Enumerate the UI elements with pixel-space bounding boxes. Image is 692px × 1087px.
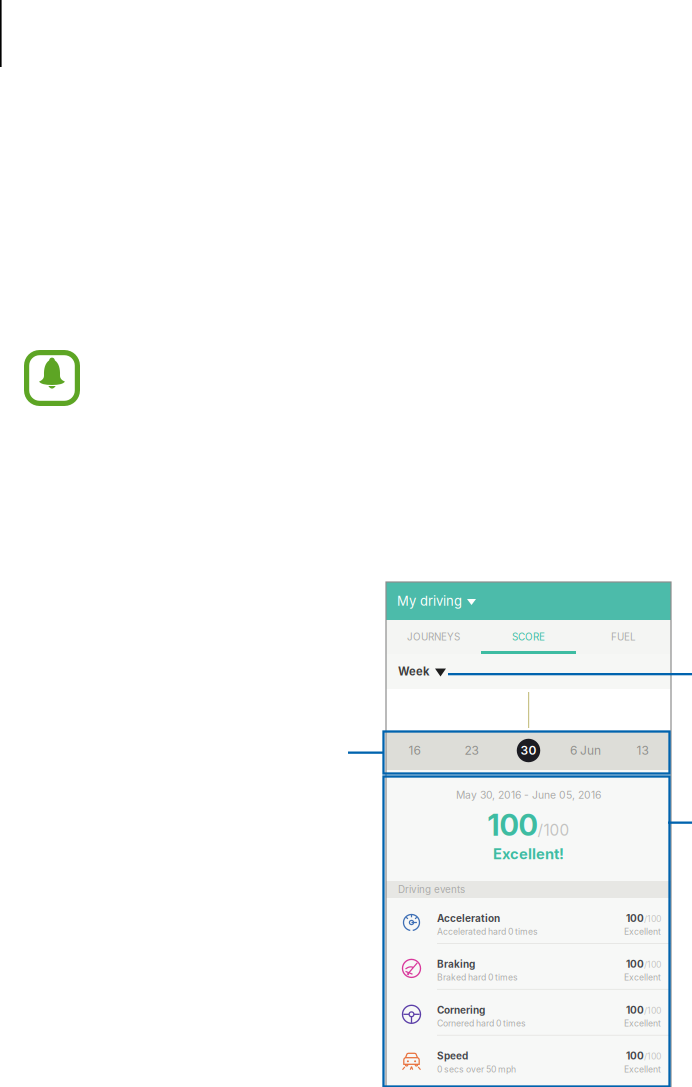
staticText: 100: [626, 958, 644, 970]
button[interactable]: Speed: [386, 1036, 671, 1081]
staticText: Cornering: [437, 1004, 485, 1016]
staticText: 30: [520, 743, 536, 758]
staticText: My driving: [397, 593, 462, 609]
staticText: 100: [626, 1004, 644, 1016]
staticText: SCORE: [512, 631, 545, 643]
staticText: JOURNEYS: [407, 631, 460, 643]
button[interactable]: My driving: [386, 582, 671, 620]
button[interactable]: Cornering: [386, 990, 671, 1035]
staticText: FUEL: [611, 631, 636, 643]
staticText: 100: [626, 1050, 644, 1062]
staticText: May 30, 2016 - June 05, 2016: [456, 789, 601, 801]
staticText: /100: [644, 913, 661, 924]
staticText: Driving events: [398, 883, 465, 895]
button[interactable]: 23: [443, 731, 500, 770]
button[interactable]: Week: [386, 654, 671, 689]
staticText: /100: [537, 821, 569, 839]
staticText: /100: [644, 959, 661, 970]
button[interactable]: 6 Jun: [557, 731, 614, 770]
staticText: 6 Jun: [570, 743, 601, 758]
staticText: 100: [487, 807, 537, 843]
staticText: Excellent: [624, 972, 661, 983]
staticText: /100: [644, 1051, 661, 1062]
staticText: Speed: [437, 1050, 468, 1062]
staticText: 23: [464, 743, 478, 758]
button[interactable]: 16: [386, 731, 443, 770]
staticText: 0 secs over 50 mph: [437, 1064, 516, 1074]
staticText: 100: [626, 912, 644, 924]
staticText: Accelerated hard 0 times: [437, 926, 538, 937]
staticText: /100: [644, 1005, 661, 1016]
staticText: Excellent!: [493, 845, 564, 863]
button[interactable]: FUEL: [576, 620, 671, 654]
button[interactable]: 13: [614, 731, 671, 770]
staticText: Braking: [437, 958, 475, 970]
button[interactable]: SCORE: [481, 620, 576, 654]
staticText: Excellent: [624, 1064, 661, 1074]
staticText: Excellent: [624, 926, 661, 937]
staticText: Cornered hard 0 times: [437, 1018, 526, 1029]
button[interactable]: Acceleration: [386, 898, 671, 943]
staticText: Excellent: [624, 1018, 661, 1029]
staticText: Week: [398, 665, 429, 678]
staticText: Acceleration: [437, 912, 500, 924]
staticText: 13: [636, 743, 648, 758]
staticText: Braked hard 0 times: [437, 972, 518, 983]
button[interactable]: JOURNEYS: [386, 620, 481, 654]
button[interactable]: Braking: [386, 944, 671, 989]
staticText: 16: [408, 743, 420, 758]
